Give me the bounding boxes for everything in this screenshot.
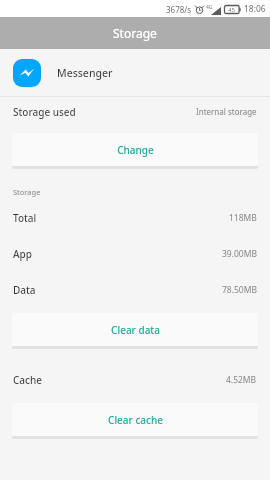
staticText: Clear data — [111, 323, 160, 337]
staticText: App — [13, 247, 32, 261]
button[interactable]: Cache — [0, 362, 270, 398]
staticText: 78.50MB — [222, 284, 257, 296]
staticText: Internal storage — [196, 106, 257, 117]
staticText: Clear cache — [108, 413, 163, 427]
staticText: 3678/s — [166, 4, 192, 15]
staticText: Total — [13, 211, 37, 225]
staticText: 118MB — [229, 212, 257, 224]
button[interactable]: App — [0, 236, 270, 272]
button[interactable]: Clear cache — [12, 403, 258, 436]
button[interactable]: Storage used — [0, 97, 270, 126]
button[interactable]: Messenger app icon — [0, 49, 270, 96]
button[interactable]: Change — [12, 133, 258, 166]
button[interactable]: Clear data — [12, 313, 258, 346]
staticText: 39.00MB — [222, 248, 257, 260]
staticText: Cache — [13, 373, 42, 387]
staticText: Storage — [13, 187, 41, 197]
staticText: 4.52MB — [226, 374, 257, 386]
other: Messenger app icon — [13, 59, 41, 87]
staticText: 45 — [228, 6, 235, 14]
staticText: 4G — [206, 4, 213, 11]
staticText: 18:06 — [244, 3, 266, 15]
staticText: Data — [13, 283, 36, 297]
button[interactable]: Data — [0, 272, 270, 308]
button[interactable]: Total — [0, 200, 270, 236]
staticText: Change — [117, 143, 154, 157]
staticText: Storage — [113, 25, 157, 41]
staticText: Messenger — [57, 66, 113, 80]
staticText: Storage used — [13, 105, 76, 119]
